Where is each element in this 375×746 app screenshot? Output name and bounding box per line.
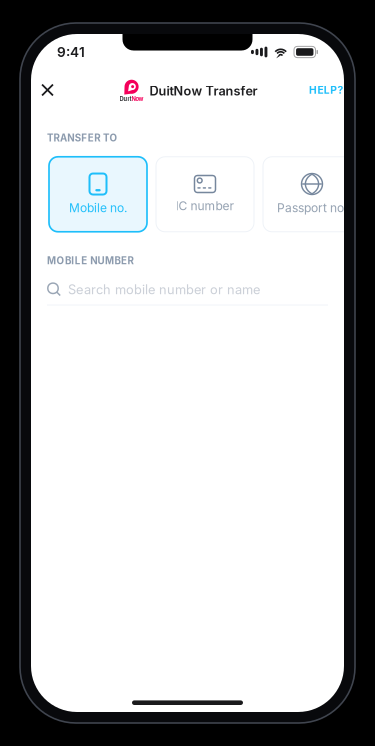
button[interactable]: IC number [156, 157, 254, 232]
staticText: MOBILE NUMBER [47, 255, 133, 267]
staticText: Passport no. [277, 200, 347, 215]
staticText: IC number [175, 198, 234, 213]
button[interactable]: Close [31, 70, 63, 110]
button[interactable]: HELP? [309, 70, 343, 110]
staticText: Now [131, 95, 143, 102]
staticText: Mobile no. [69, 200, 127, 215]
staticText: TRANSFER TO [47, 132, 117, 144]
staticText: DuitNow Transfer [149, 83, 257, 99]
staticText: Search mobile number or name [68, 282, 260, 297]
button[interactable]: Mobile no. [49, 157, 147, 232]
button[interactable]: Passport no. [263, 157, 361, 232]
button[interactable]: Search mobile number or name [31, 267, 344, 306]
staticText: 9:41 [57, 44, 85, 60]
staticText: Duit [119, 95, 131, 102]
staticText: HELP? [309, 84, 343, 96]
